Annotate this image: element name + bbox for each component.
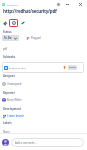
staticText: Kirsty White [7,98,22,102]
staticText: Subtasks [3,55,16,59]
button[interactable]: Watch [56,2,61,7]
staticText: Development [3,107,21,111]
staticText: SCRUM-5 [7,3,18,6]
staticText: Flagged [31,36,41,40]
button[interactable]: Unassigned [2,82,22,86]
button[interactable]: Add a comment... [11,138,84,147]
staticText: SCRUM-6 test [9,66,63,69]
button[interactable]: SCRUM-6 test [2,62,84,73]
staticText: Status [3,30,12,34]
button[interactable]: Attach [0,19,9,27]
button[interactable]: Add a child issue [9,19,18,27]
staticText: Create branch [7,114,25,118]
staticText: Assignee [3,74,16,78]
staticText: To Do [4,36,12,40]
staticText: Labels [3,121,12,125]
staticText: TO DO [69,66,76,69]
button[interactable]: Close [78,2,83,7]
staticText: Unassigned [7,82,22,86]
button[interactable]: Link issue [18,19,27,27]
staticText: Reporter [3,91,15,95]
button[interactable]: Flagged [27,36,41,40]
button[interactable]: To Do [2,35,19,41]
button[interactable]: Kirsty White [2,98,22,102]
staticText: None [3,130,10,134]
staticText: http://redhat/security/pdf [3,8,57,14]
button[interactable]: Minimise [65,2,70,7]
button[interactable]: Create branch [3,114,25,118]
staticText: pdf [3,47,8,51]
staticText: Add a comment... [15,141,37,145]
